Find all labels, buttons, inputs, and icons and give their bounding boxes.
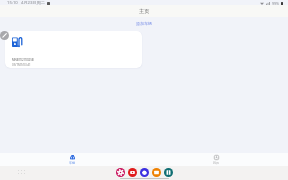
button[interactable]: 我的 xyxy=(144,155,288,165)
button[interactable]: Settings xyxy=(116,168,125,177)
staticText: 99% xyxy=(272,1,280,6)
button[interactable]: MNB7027002SB xyxy=(5,31,142,68)
button[interactable]: Notes xyxy=(164,168,173,177)
staticText: 我的 xyxy=(213,161,220,165)
staticText: 05/TM7/03:41 xyxy=(12,63,31,67)
staticText: MNB7027002SB xyxy=(12,58,34,62)
staticText: 4月23日周二 xyxy=(21,0,45,6)
staticText: 车辆 xyxy=(69,161,76,165)
button[interactable]: 车辆 xyxy=(0,155,144,165)
button[interactable]: Gallery xyxy=(152,168,161,177)
button[interactable]: YouTube xyxy=(128,168,137,177)
button[interactable]: Edit vehicle xyxy=(0,31,9,40)
staticText: 添加车辆 xyxy=(136,21,152,26)
staticText: 15:10 xyxy=(7,0,18,6)
button[interactable]: Browser xyxy=(140,168,149,177)
button[interactable]: 添加车辆 xyxy=(0,19,288,27)
staticText: 主页 xyxy=(139,8,150,15)
